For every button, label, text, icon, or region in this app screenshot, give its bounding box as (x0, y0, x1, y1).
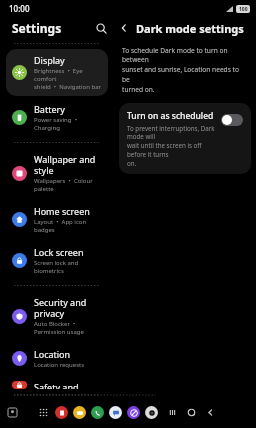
button[interactable]: Messages (108, 405, 123, 420)
staticText: 10:00 (9, 3, 30, 14)
staticText: Wallpaper and style (34, 153, 96, 176)
button[interactable]: Office (54, 405, 69, 420)
button[interactable]: Lock screen (6, 241, 108, 280)
button[interactable]: Camera (144, 405, 159, 420)
button[interactable]: Location (6, 343, 108, 374)
button[interactable]: Files (72, 405, 87, 420)
staticText: Display (34, 54, 65, 66)
button[interactable]: Home (184, 405, 199, 420)
staticText: Layout • App icon badges (34, 218, 104, 234)
staticText: Wallpapers • Colour palette (34, 177, 93, 193)
button[interactable]: Battery (6, 98, 108, 137)
button[interactable]: Apps (35, 404, 51, 420)
staticText: Power saving • Charging (34, 116, 104, 132)
staticText: Location (34, 348, 71, 360)
staticText: Screen lock and biometrics (34, 259, 79, 275)
staticText: Security and privacy (34, 296, 87, 319)
button[interactable]: Security and privacy (6, 291, 108, 341)
staticText: Home screen (34, 205, 90, 217)
button[interactable]: Turn on as scheduled toggle (221, 114, 243, 126)
button[interactable]: Phone (90, 405, 105, 420)
button[interactable]: Back (114, 18, 134, 38)
button[interactable]: recents (165, 405, 180, 420)
staticText: Location requests (34, 361, 85, 369)
staticText: Settings (12, 20, 62, 36)
staticText: To schedule Dark mode to turn on between… (122, 46, 248, 94)
button[interactable]: Safety and emergency (6, 376, 108, 394)
staticText: Turn on as scheduled (127, 110, 214, 122)
staticText: To prevent interruptions, Dark mode will… (127, 124, 216, 167)
staticText: Safety and emergency (34, 381, 82, 389)
button[interactable]: Keyboard (4, 404, 20, 420)
button[interactable]: Display (6, 49, 108, 96)
button[interactable]: Internet (126, 405, 141, 420)
staticText: 100 (239, 6, 248, 13)
staticText: Dark mode settings (136, 21, 244, 36)
button[interactable]: Home screen (6, 200, 108, 239)
staticText: Auto Blocker • Permission usage (34, 320, 84, 336)
button[interactable]: Search (90, 17, 112, 39)
staticText: Brightness • Eye comfort shield • Naviga… (34, 67, 104, 91)
button[interactable]: Back (203, 405, 218, 420)
button[interactable]: Turn on as scheduled (119, 103, 251, 174)
staticText: Battery (34, 103, 65, 115)
staticText: Lock screen (34, 246, 84, 258)
button[interactable]: Wallpaper and style (6, 148, 108, 198)
